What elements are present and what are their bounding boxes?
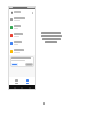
button[interactable] [8, 31, 36, 39]
button[interactable] [11, 63, 18, 66]
button[interactable]: Home [26, 79, 29, 84]
button[interactable]: Library [15, 79, 18, 84]
button[interactable] [8, 39, 36, 47]
button[interactable] [8, 15, 36, 23]
button[interactable]: Menu [10, 11, 13, 14]
button[interactable] [25, 63, 33, 66]
button[interactable] [8, 47, 36, 55]
button[interactable]: More options [31, 11, 34, 14]
button[interactable] [8, 23, 36, 31]
button[interactable]: Menu [8, 9, 36, 15]
